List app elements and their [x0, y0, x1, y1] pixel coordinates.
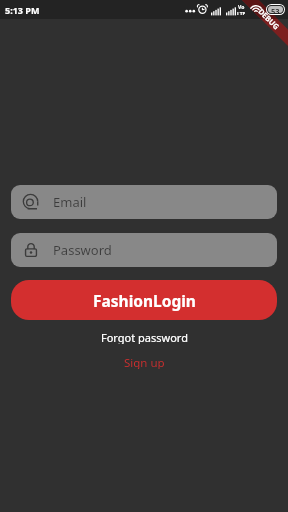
button[interactable]: Forgot password: [0, 330, 288, 344]
staticText: LTE: [237, 11, 246, 15]
staticText: Forgot password: [101, 330, 188, 344]
staticText: DEBUG: [256, 6, 282, 32]
other: Debug banner: [242, 0, 288, 46]
staticText: Email: [53, 193, 87, 211]
button[interactable]: Password: [11, 233, 277, 267]
staticText: 5:13 PM: [5, 4, 40, 16]
staticText: Sign up: [124, 355, 165, 369]
staticText: Password: [53, 241, 112, 259]
button[interactable]: Sign up: [0, 355, 288, 369]
staticText: FashionLogin: [93, 290, 196, 311]
staticText: 53: [271, 6, 280, 13]
button[interactable]: FashionLogin: [11, 280, 277, 320]
staticText: Vo: [238, 4, 245, 11]
button[interactable]: Email: [11, 185, 277, 219]
